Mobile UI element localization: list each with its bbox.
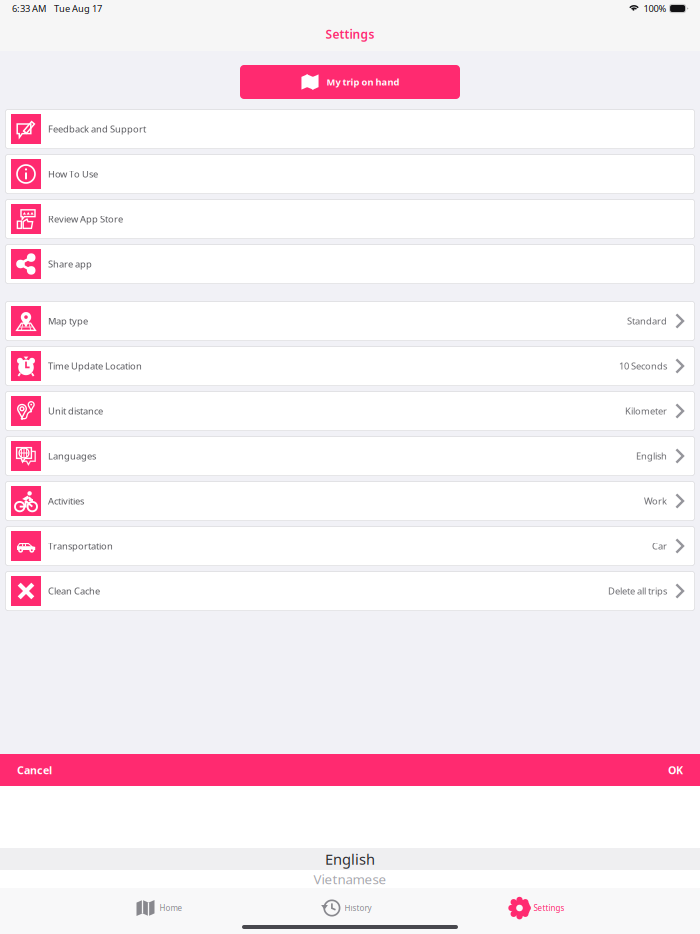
staticText: My trip on hand <box>326 76 399 88</box>
staticText: Delete all trips <box>608 585 667 597</box>
button[interactable]: Feedback and Support <box>5 109 695 149</box>
staticText: English <box>325 849 375 869</box>
staticText: Unit distance <box>48 405 103 417</box>
button[interactable]: Share app <box>5 244 695 284</box>
staticText: Cancel <box>17 763 52 777</box>
staticText: Standard <box>627 315 667 327</box>
staticText: History <box>344 903 371 913</box>
button[interactable]: Cancel <box>5 754 64 786</box>
staticText: 100% <box>643 2 666 15</box>
staticText: Map type <box>48 315 88 327</box>
staticText: Clean Cache <box>48 585 100 597</box>
staticText: Work <box>644 495 667 507</box>
staticText: 6:33 AM <box>12 2 46 15</box>
staticText: Settings <box>533 903 564 913</box>
button[interactable]: OK <box>656 754 695 786</box>
staticText: Feedback and Support <box>48 123 146 135</box>
button[interactable]: Clean Cache <box>5 571 695 611</box>
button[interactable]: Unit distance <box>5 391 695 431</box>
button[interactable]: Review App Store <box>5 199 695 239</box>
staticText: Home <box>159 903 182 913</box>
staticText: 10 Seconds <box>619 360 667 372</box>
button[interactable]: How To Use <box>5 154 695 194</box>
button[interactable]: History <box>316 893 375 923</box>
button[interactable]: My trip on hand <box>240 65 460 99</box>
staticText: Review App Store <box>48 213 123 225</box>
button[interactable]: Home <box>131 893 186 923</box>
staticText: Settings <box>325 26 374 42</box>
button[interactable]: Map type <box>5 301 695 341</box>
button[interactable]: Settings <box>505 893 568 923</box>
staticText: Car <box>652 540 667 552</box>
staticText: English <box>636 450 667 462</box>
staticText: Tue Aug 17 <box>54 2 102 15</box>
staticText: Activities <box>48 495 84 507</box>
staticText: Languages <box>48 450 96 462</box>
staticText: OK <box>668 763 683 777</box>
staticText: How To Use <box>48 168 98 180</box>
staticText: Share app <box>48 258 92 270</box>
staticText: Transportation <box>48 540 113 552</box>
button[interactable]: Transportation <box>5 526 695 566</box>
button[interactable]: Vietnamese <box>0 870 700 888</box>
button[interactable]: Activities <box>5 481 695 521</box>
button[interactable]: English <box>0 848 700 870</box>
button[interactable]: Time Update Location <box>5 346 695 386</box>
staticText: Vietnamese <box>313 870 386 888</box>
button[interactable]: Languages <box>5 436 695 476</box>
staticText: Kilometer <box>625 405 667 417</box>
staticText: Time Update Location <box>48 360 142 372</box>
